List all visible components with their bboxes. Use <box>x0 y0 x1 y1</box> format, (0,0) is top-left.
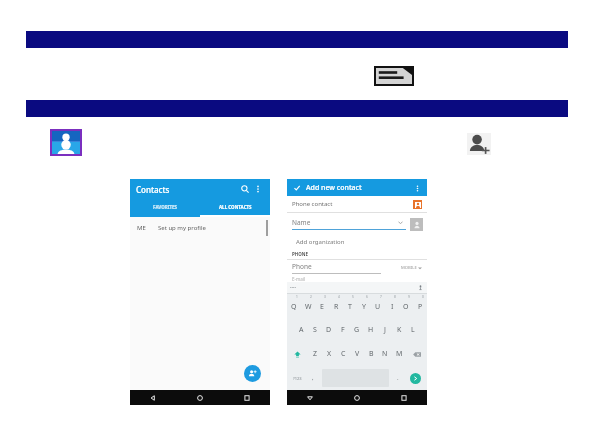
staticText: ME <box>137 224 146 232</box>
button[interactable]: C <box>336 342 350 366</box>
staticText: Y <box>362 302 366 312</box>
button[interactable]: 8 <box>385 294 399 318</box>
staticText: 1 <box>296 295 298 299</box>
button[interactable]: 7 <box>371 294 385 318</box>
staticText: FAVORITES <box>153 204 178 210</box>
staticText: O <box>403 302 409 312</box>
staticText: 6 <box>366 295 368 299</box>
button[interactable]: H <box>364 318 378 342</box>
staticText: Q <box>291 302 297 312</box>
button[interactable]: Next <box>410 373 421 384</box>
staticText: Phone <box>292 262 312 271</box>
staticText: S <box>313 325 317 335</box>
staticText: J <box>384 325 386 335</box>
button[interactable]: Add contact <box>244 365 261 382</box>
staticText: G <box>354 325 360 335</box>
button[interactable]: 6 <box>357 294 371 318</box>
button[interactable]: F <box>336 318 350 342</box>
button[interactable]: Z <box>308 342 322 366</box>
button[interactable]: Add photo <box>410 218 423 231</box>
button[interactable]: More options <box>252 183 264 195</box>
staticText: MOBILE <box>401 265 417 271</box>
button[interactable]: Save <box>292 183 302 193</box>
button[interactable]: , <box>307 366 319 390</box>
button[interactable]: D <box>322 318 336 342</box>
button[interactable]: Delete <box>406 342 427 366</box>
staticText: I <box>391 302 394 312</box>
button[interactable]: Add organization <box>287 235 427 249</box>
button[interactable]: N <box>378 342 392 366</box>
staticText: 0 <box>422 295 424 299</box>
button[interactable]: ME <box>130 217 270 239</box>
staticText: V <box>355 349 360 359</box>
staticText: 3 <box>324 295 326 299</box>
button[interactable]: K <box>392 318 406 342</box>
button[interactable]: ALL CONTACTS <box>200 199 270 215</box>
button[interactable]: J <box>378 318 392 342</box>
staticText: D <box>326 325 332 335</box>
button[interactable]: Recents <box>223 390 270 405</box>
button[interactable]: Phone contact <box>287 196 427 212</box>
button[interactable]: 5 <box>343 294 357 318</box>
button[interactable]: G <box>350 318 364 342</box>
staticText: T <box>348 302 352 312</box>
button[interactable]: 4 <box>329 294 343 318</box>
staticText: N <box>382 349 388 359</box>
button[interactable]: A <box>294 318 308 342</box>
staticText: Z <box>313 349 318 359</box>
staticText: U <box>375 302 381 312</box>
button[interactable]: Shift <box>287 342 308 366</box>
staticText: Add new contact <box>306 183 362 193</box>
staticText: 9 <box>408 295 410 299</box>
staticText: Phone contact <box>292 200 333 208</box>
staticText: Add organization <box>296 238 345 246</box>
staticText: PHONE <box>292 251 308 257</box>
staticText: ALL CONTACTS <box>219 204 252 210</box>
button[interactable]: MOBILE <box>401 265 422 271</box>
other: Add contact <box>467 133 491 155</box>
staticText: Set up my profile <box>158 224 206 232</box>
staticText: M <box>396 349 403 359</box>
staticText: L <box>411 325 415 335</box>
button[interactable]: 1 <box>287 294 301 318</box>
staticText: X <box>327 349 332 359</box>
staticText: Name <box>292 218 311 227</box>
staticText: 7 <box>380 295 382 299</box>
button[interactable]: M <box>392 342 406 366</box>
button[interactable]: X <box>322 342 336 366</box>
button[interactable]: Recents <box>380 390 427 405</box>
button[interactable]: ?123 <box>287 366 307 390</box>
staticText: 4 <box>338 295 340 299</box>
button[interactable]: 3 <box>315 294 329 318</box>
staticText: ?123 <box>293 376 302 381</box>
button[interactable]: Search <box>238 182 252 196</box>
button[interactable]: FAVORITES <box>130 199 200 215</box>
button[interactable]: 2 <box>301 294 315 318</box>
button[interactable]: Home <box>333 390 380 405</box>
button[interactable]: Back <box>287 390 333 405</box>
staticText: •••• <box>290 285 297 290</box>
staticText: E-mail <box>292 276 306 282</box>
button[interactable]: Back <box>130 390 176 405</box>
button[interactable]: More options <box>412 183 422 193</box>
button[interactable]: Voice input <box>417 284 424 291</box>
staticText: P <box>418 302 423 312</box>
button[interactable]: L <box>406 318 420 342</box>
button[interactable]: V <box>350 342 364 366</box>
staticText: W <box>305 302 312 312</box>
staticText: E <box>320 302 324 312</box>
staticText: . <box>397 374 399 382</box>
staticText: , <box>312 374 314 382</box>
staticText: R <box>334 302 339 312</box>
staticText: K <box>397 325 402 335</box>
button[interactable]: Home <box>176 390 223 405</box>
button[interactable]: 0 <box>413 294 427 318</box>
button[interactable]: B <box>364 342 378 366</box>
staticText: A <box>299 325 304 335</box>
button[interactable]: 9 <box>399 294 413 318</box>
staticText: 8 <box>394 295 396 299</box>
staticText: C <box>341 349 346 359</box>
button[interactable]: S <box>308 318 322 342</box>
